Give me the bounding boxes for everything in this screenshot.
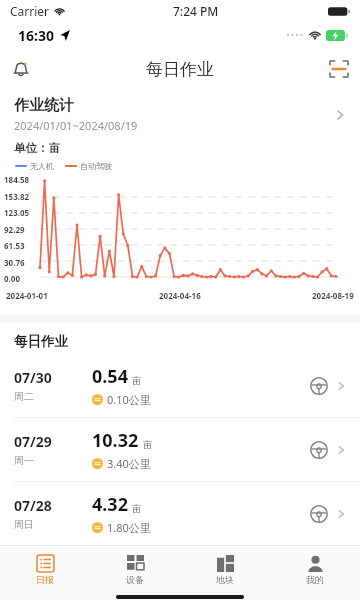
staticText: 亩 xyxy=(132,503,142,515)
button[interactable]: Notifications xyxy=(0,48,42,90)
staticText: 周二 xyxy=(14,390,34,403)
staticText: 184.58 xyxy=(4,174,30,185)
staticText: 7:24 PM xyxy=(173,3,219,19)
staticText: 30.76 xyxy=(4,257,25,268)
staticText: 日报 xyxy=(36,574,54,585)
staticText: 2024-04-16 xyxy=(159,290,201,301)
staticText: 07/30 xyxy=(14,368,52,387)
staticText: 2024-08-19 xyxy=(312,290,354,301)
staticText: 16:30 xyxy=(18,26,54,45)
staticText: 2024-01-01 xyxy=(6,290,48,301)
staticText: 0.54 xyxy=(92,364,128,389)
staticText: 设备 xyxy=(126,574,144,585)
staticText: 作业统计 xyxy=(14,96,74,115)
staticText: 153.82 xyxy=(4,191,30,202)
button[interactable]: 我的 xyxy=(270,546,360,594)
staticText: Carrier xyxy=(10,3,50,19)
staticText: 0.10公里 xyxy=(107,392,151,407)
button[interactable]: 07/29 xyxy=(0,418,360,481)
staticText: 07/28 xyxy=(14,496,52,515)
staticText: 10.32 xyxy=(92,428,139,453)
staticText: 自动驾驶 xyxy=(80,161,112,171)
staticText: 亩 xyxy=(143,439,153,451)
staticText: 每日作业 xyxy=(146,59,214,80)
button[interactable]: 07/30 xyxy=(0,354,360,417)
staticText: 61.53 xyxy=(4,240,25,251)
staticText: 我的 xyxy=(306,574,324,585)
staticText: 地块 xyxy=(216,574,234,585)
staticText: 2024/01/01~2024/08/19 xyxy=(14,118,138,133)
staticText: 单位：亩 xyxy=(14,141,60,155)
button[interactable]: 作业统计 xyxy=(0,90,360,133)
staticText: 3.40公里 xyxy=(107,456,151,471)
staticText: 无人机 xyxy=(30,161,54,171)
staticText: 周一 xyxy=(14,454,34,467)
staticText: 亩 xyxy=(132,375,142,387)
button[interactable]: 07/28 xyxy=(0,482,360,545)
staticText: 每日作业 xyxy=(14,333,68,350)
staticText: 92.29 xyxy=(4,224,25,235)
button[interactable]: 地块 xyxy=(180,546,270,594)
button[interactable]: 日报 xyxy=(0,546,90,594)
button[interactable]: 设备 xyxy=(90,546,180,594)
staticText: 0.00 xyxy=(4,273,20,284)
staticText: 周日 xyxy=(14,518,34,531)
button[interactable]: Scan xyxy=(318,48,360,90)
staticText: 1.80公里 xyxy=(107,520,151,535)
staticText: 4.32 xyxy=(92,492,128,517)
staticText: 07/29 xyxy=(14,432,52,451)
staticText: 123.05 xyxy=(4,207,30,218)
